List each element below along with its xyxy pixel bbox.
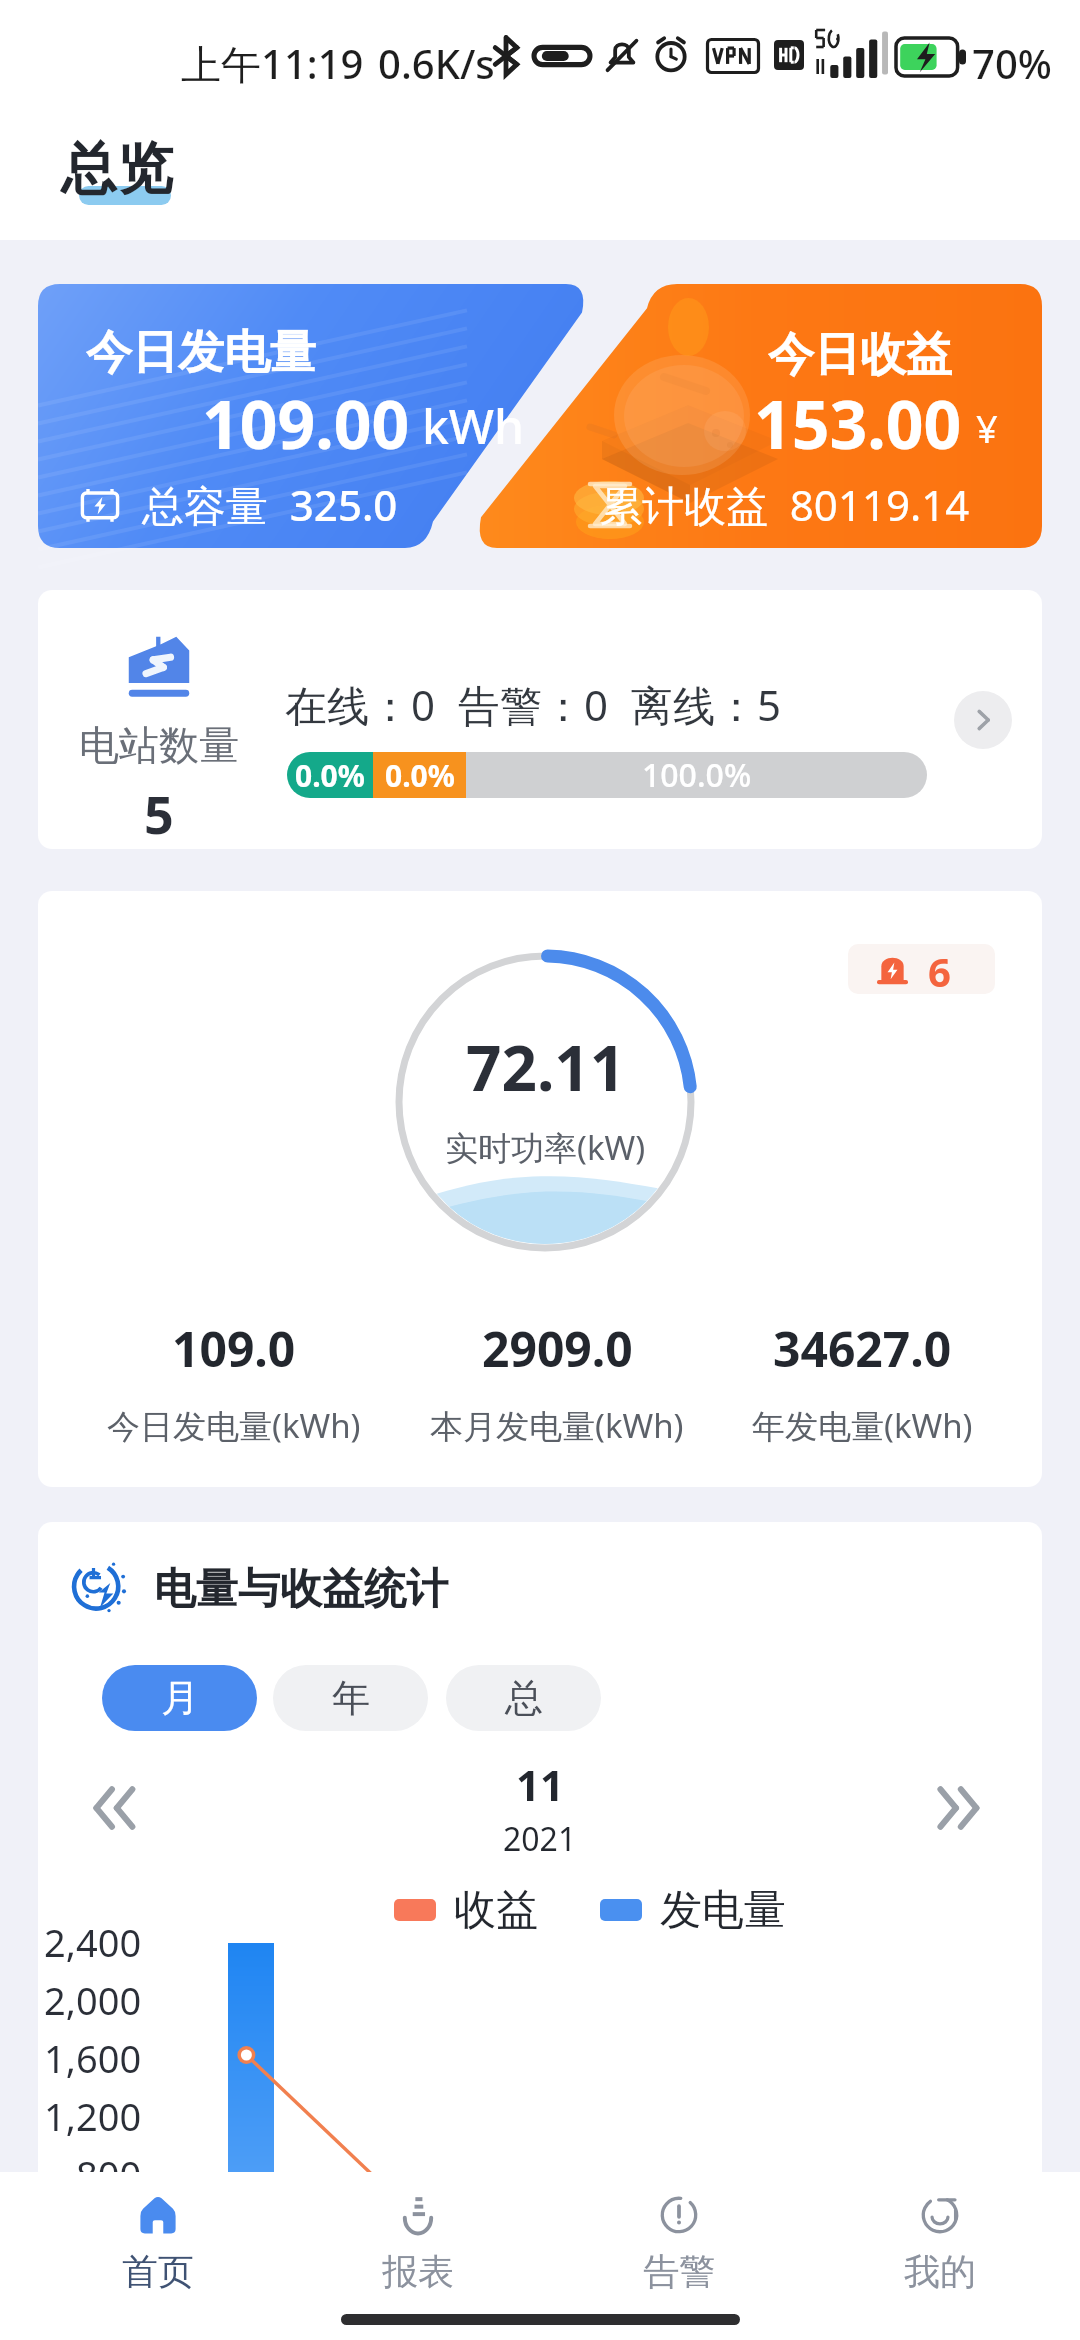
staticText: 1,200 <box>44 2090 142 2142</box>
staticText: 离线：5 <box>631 676 782 733</box>
button[interactable]: 电站数量 <box>38 590 1042 849</box>
staticText: 年 <box>332 1674 370 1722</box>
staticText: 告警 <box>643 2249 715 2294</box>
staticText: 累计收益 80119.14 <box>600 476 970 533</box>
staticText: 电量与收益统计 <box>154 1563 448 1616</box>
staticText: 11 <box>516 1756 565 1813</box>
staticText: 109.00 <box>202 378 410 468</box>
staticText: 月 <box>161 1674 199 1722</box>
button[interactable]: 今日发电量 <box>38 284 588 548</box>
button[interactable]: 报表 <box>288 2172 548 2294</box>
staticText: 100.0% <box>642 753 752 797</box>
button[interactable]: 首页 <box>28 2172 288 2294</box>
button[interactable]: 告警 <box>548 2172 809 2294</box>
staticText: 总容量 325.0 <box>142 476 398 533</box>
button[interactable]: 年 <box>273 1665 428 1731</box>
staticText: 800 <box>76 2148 142 2200</box>
staticText: 今日收益 <box>768 326 952 384</box>
button[interactable]: 今日收益 <box>475 284 1042 548</box>
staticText: 本月发电量(kWh) <box>430 1403 684 1448</box>
staticText: 今日发电量(kWh) <box>107 1403 361 1448</box>
button[interactable]: Previous <box>38 1753 198 1863</box>
staticText: 总览 <box>61 134 173 205</box>
staticText: 153.00 <box>754 378 962 468</box>
staticText: 2,400 <box>44 1916 142 1968</box>
staticText: 0.0% <box>295 755 365 796</box>
button[interactable]: Alarms 6 <box>848 944 995 994</box>
staticText: 报表 <box>382 2249 454 2294</box>
staticText: 34627.0 <box>773 1316 952 1381</box>
staticText: 电站数量 <box>79 720 239 770</box>
staticText: 今日发电量 <box>86 324 316 382</box>
staticText: 0.0% <box>385 755 455 796</box>
staticText: ¥ <box>976 402 998 454</box>
staticText: 6 <box>928 944 951 994</box>
button[interactable]: View stations <box>954 691 1012 749</box>
staticText: kWh <box>422 393 525 458</box>
staticText: 年发电量(kWh) <box>752 1403 973 1448</box>
button[interactable]: 月 <box>102 1665 257 1731</box>
staticText: 首页 <box>122 2249 194 2294</box>
staticText: 2909.0 <box>482 1316 633 1381</box>
staticText: 70% <box>972 36 1052 90</box>
staticText: 2,000 <box>44 1974 142 2026</box>
staticText: 收益 <box>454 1884 538 1937</box>
button[interactable]: 我的 <box>809 2172 1070 2294</box>
staticText: 实时功率(kW) <box>445 1125 646 1170</box>
staticText: 109.0 <box>172 1316 296 1381</box>
staticText: 1,600 <box>44 2032 142 2084</box>
staticText: 总 <box>505 1674 543 1722</box>
staticText: 5 <box>144 778 174 849</box>
staticText: 72.11 <box>466 1025 626 1109</box>
staticText: 在线：0 <box>285 676 436 733</box>
button[interactable]: 总 <box>446 1665 601 1731</box>
staticText: 上午11:19 <box>181 36 364 91</box>
staticText: 发电量 <box>660 1884 786 1937</box>
staticText: 告警：0 <box>458 676 609 733</box>
staticText: 0.6K/s <box>378 36 495 90</box>
staticText: 2021 <box>503 1817 577 1861</box>
staticText: 我的 <box>904 2249 976 2294</box>
button[interactable]: Next <box>882 1753 1042 1863</box>
